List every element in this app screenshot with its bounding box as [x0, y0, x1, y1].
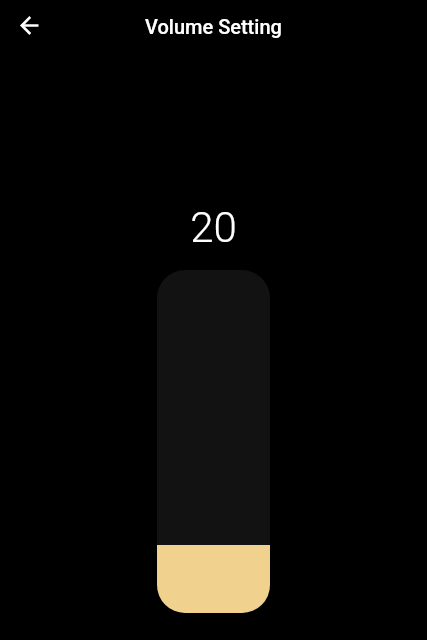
- button[interactable]: Volume 20 percent: [157, 270, 270, 613]
- button[interactable]: Back: [7, 3, 53, 49]
- staticText: 20: [190, 203, 237, 252]
- staticText: Volume Setting: [145, 15, 282, 38]
